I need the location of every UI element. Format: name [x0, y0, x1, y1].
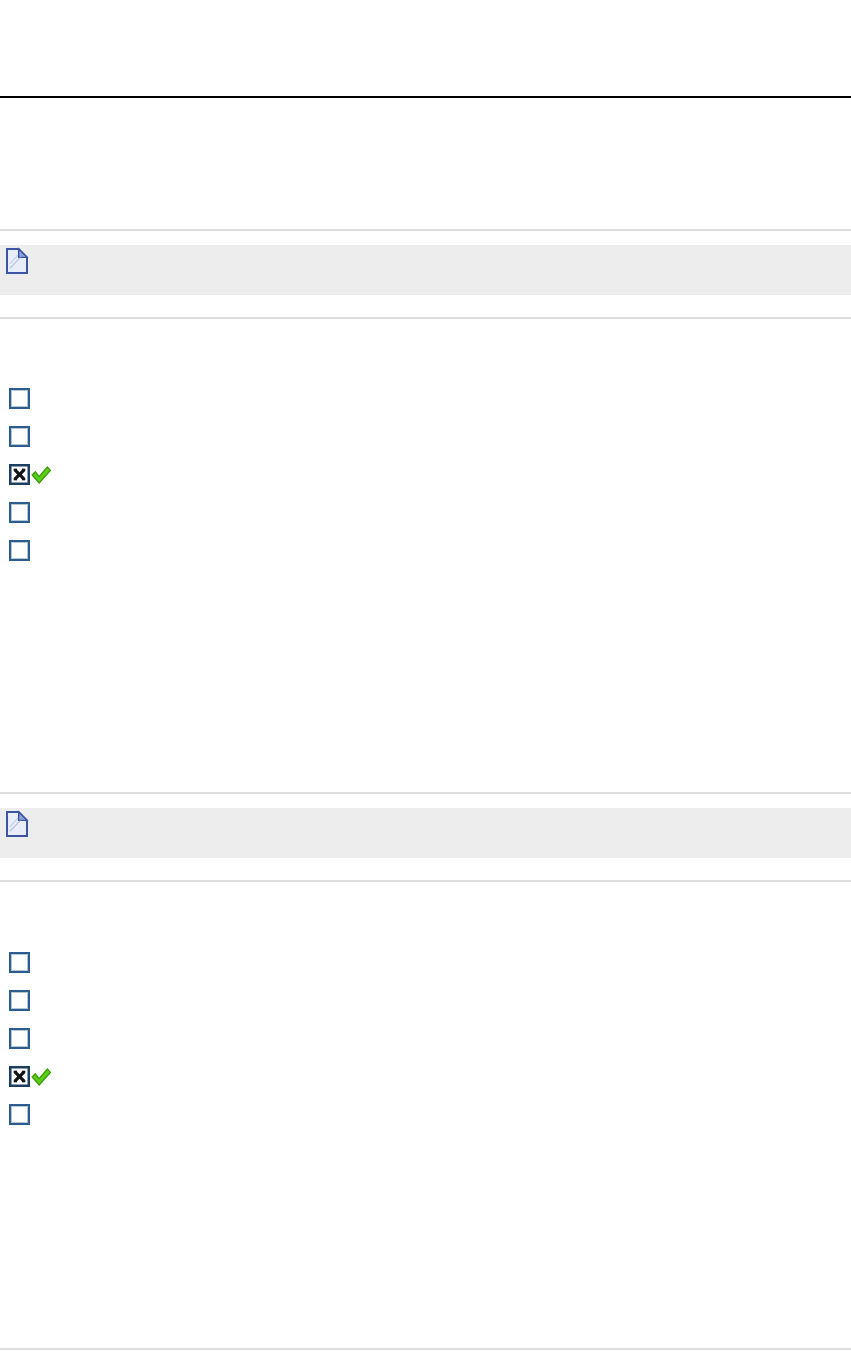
button[interactable]: Unchecked option: [9, 990, 30, 1011]
button[interactable]: Document: [0, 808, 851, 858]
button[interactable]: Unchecked option: [9, 1028, 30, 1049]
button[interactable]: Unchecked option: [9, 426, 30, 447]
button[interactable]: Unchecked option: [9, 502, 30, 523]
button[interactable]: Unchecked option: [9, 540, 30, 561]
button[interactable]: Checked option: [9, 464, 30, 485]
button[interactable]: Unchecked option: [9, 1104, 30, 1125]
button[interactable]: Checked option: [9, 1066, 30, 1087]
button[interactable]: Document: [0, 245, 851, 295]
button[interactable]: Document: [6, 811, 28, 837]
button[interactable]: Unchecked option: [9, 952, 30, 973]
button[interactable]: Unchecked option: [9, 388, 30, 409]
button[interactable]: Document: [6, 248, 28, 274]
